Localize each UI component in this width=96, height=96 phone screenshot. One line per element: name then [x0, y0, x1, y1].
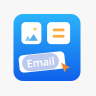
- staticText: Email: [26, 55, 54, 69]
